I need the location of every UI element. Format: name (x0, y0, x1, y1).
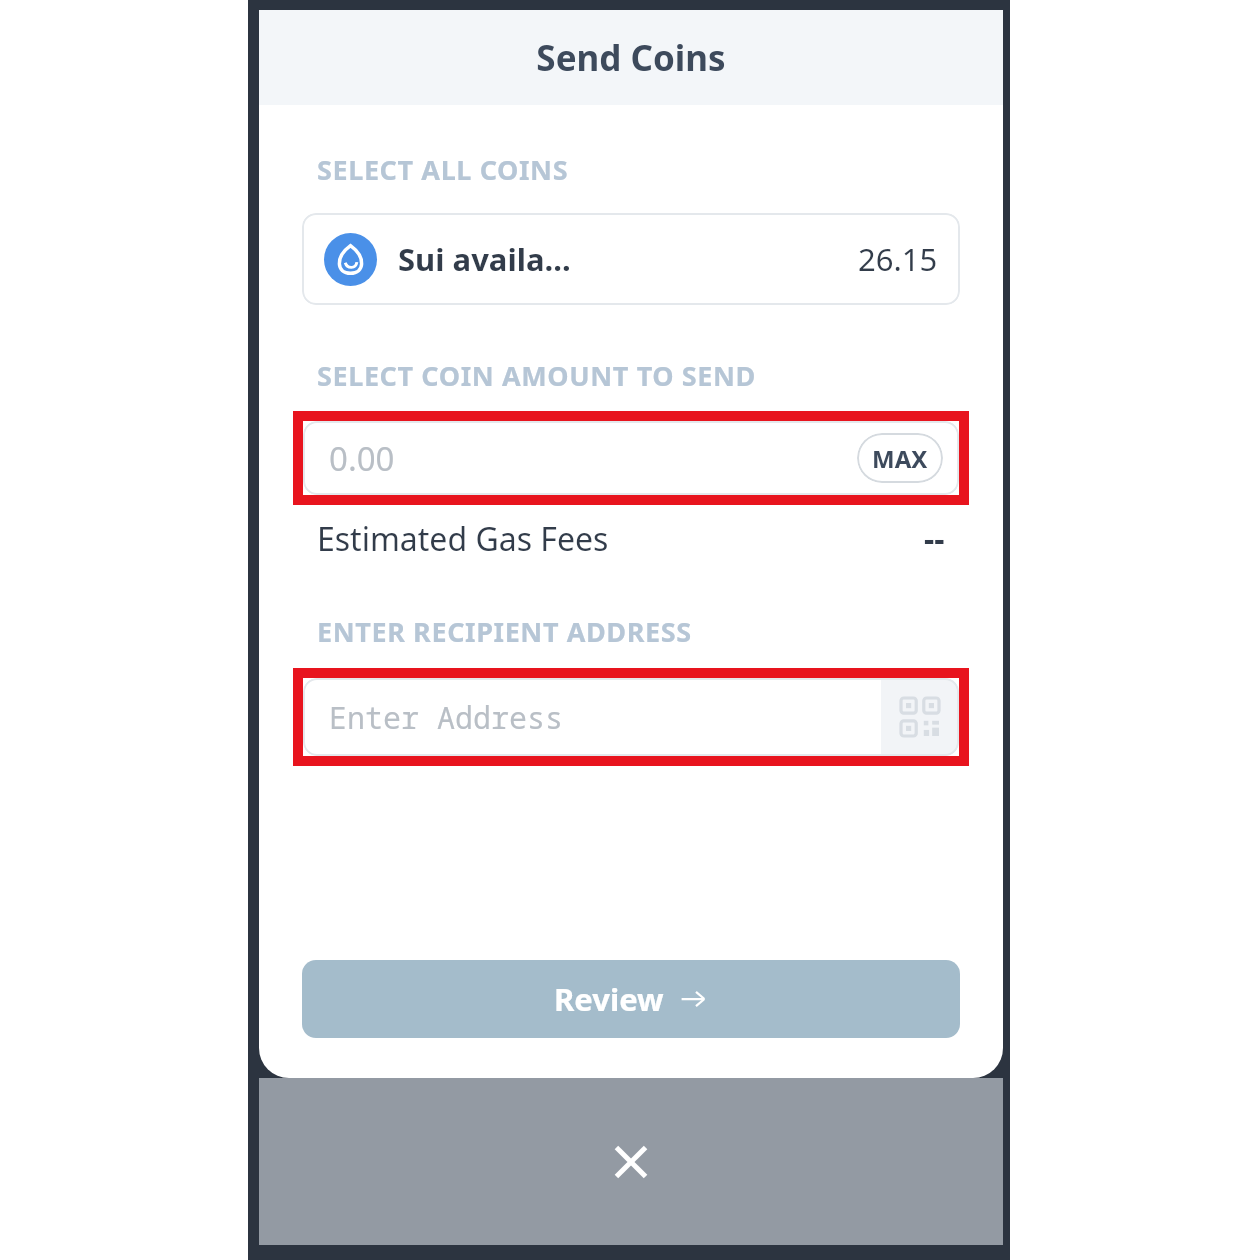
button[interactable]: Sui availa... (302, 213, 960, 305)
staticText: Estimated Gas Fees (317, 517, 609, 561)
staticText: Sui availa... (398, 238, 571, 280)
staticText: Review (554, 978, 664, 1020)
button[interactable]: Close (259, 1078, 1003, 1245)
staticText: SELECT COIN AMOUNT TO SEND (317, 357, 756, 394)
staticText: -- (924, 517, 945, 561)
button[interactable]: Review (302, 960, 960, 1038)
button[interactable]: Scan QR code (881, 678, 959, 756)
button[interactable]: Enter Address (303, 678, 959, 756)
button[interactable]: 0.00 (303, 421, 959, 495)
staticText: Send Coins (536, 34, 726, 82)
staticText: Enter Address (329, 697, 563, 738)
button[interactable]: MAX (857, 433, 943, 483)
staticText: MAX (872, 442, 928, 475)
staticText: ENTER RECIPIENT ADDRESS (317, 613, 692, 650)
staticText: 26.15 (858, 238, 938, 280)
staticText: 0.00 (329, 436, 395, 481)
staticText: SELECT ALL COINS (317, 151, 569, 188)
